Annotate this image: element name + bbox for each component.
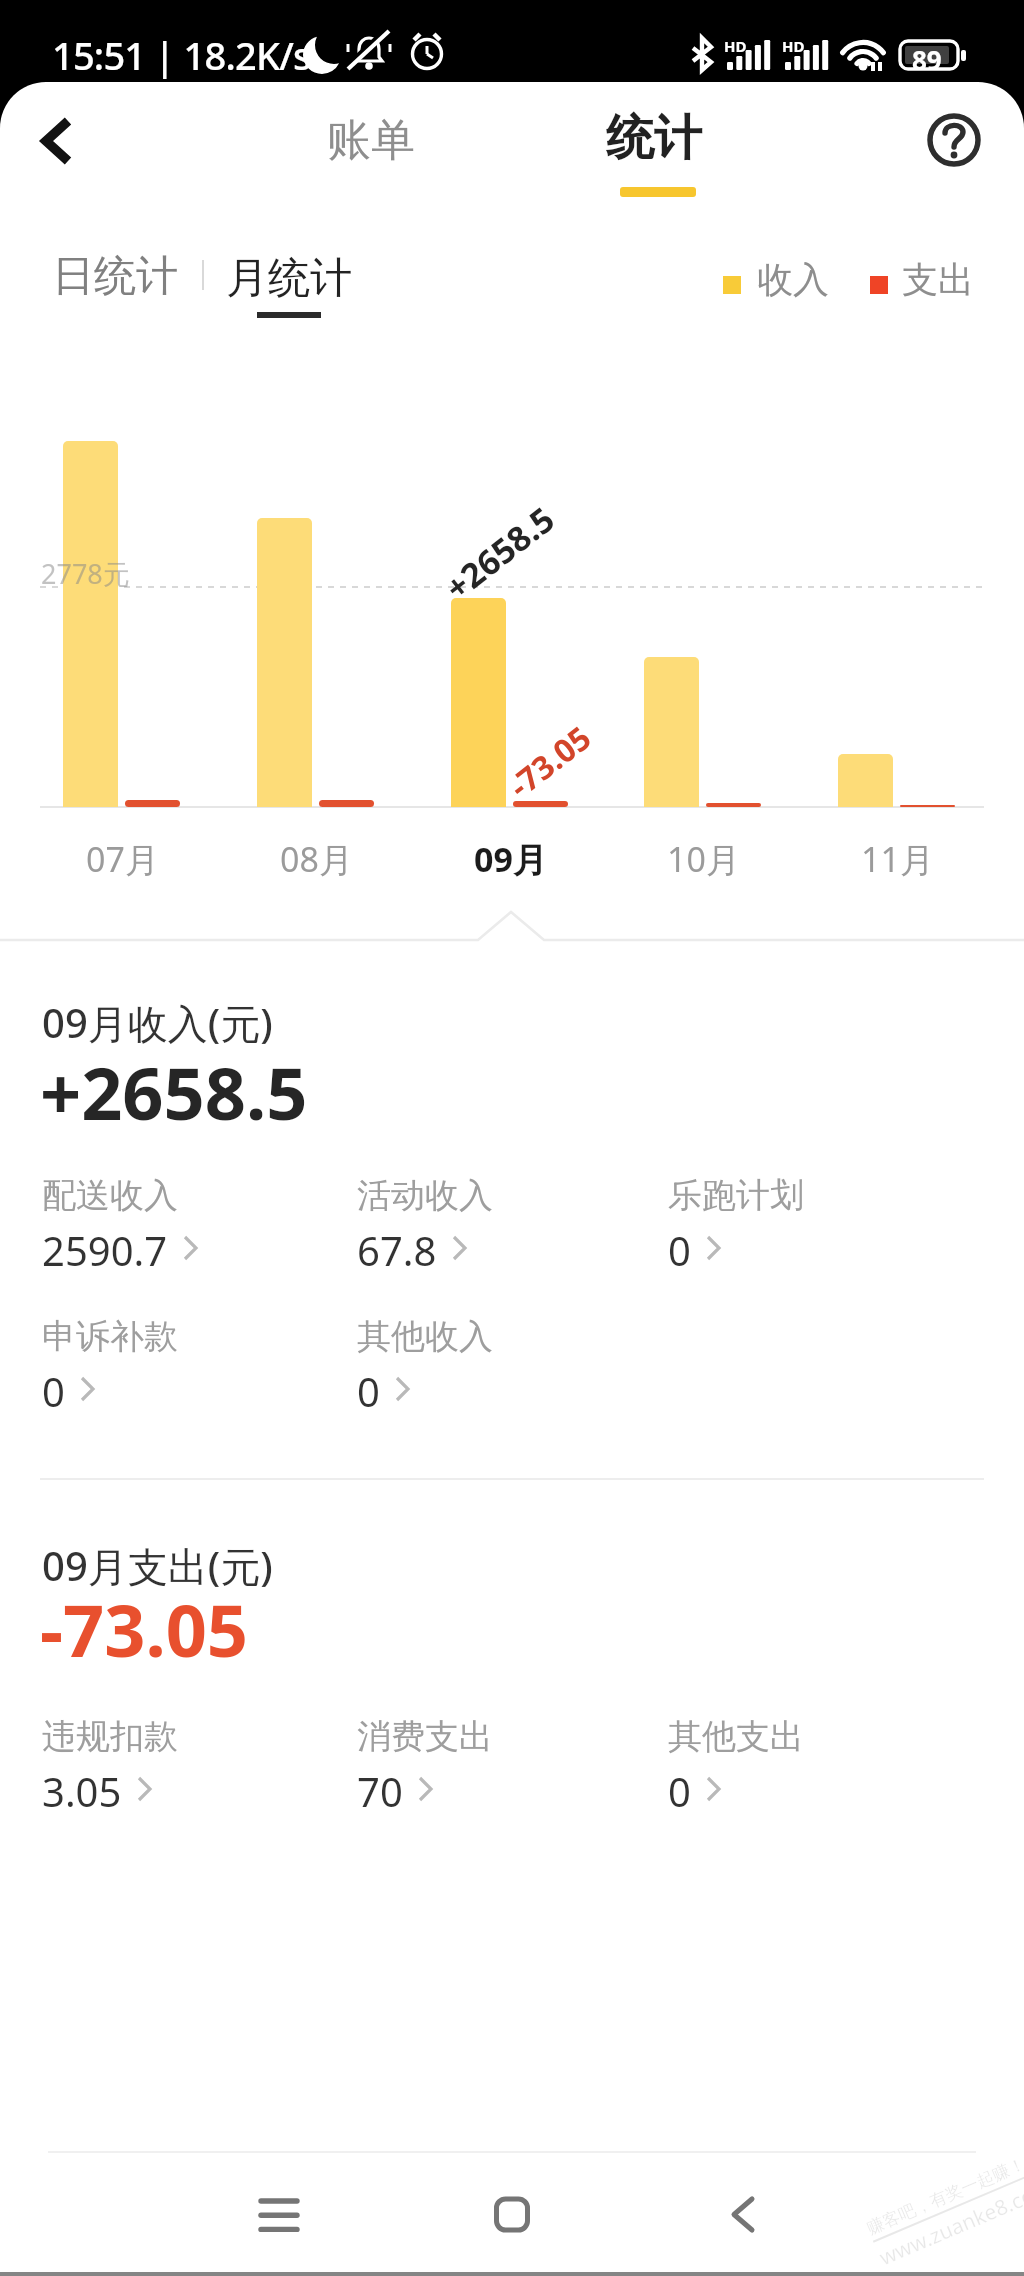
staticText: HD bbox=[782, 36, 805, 56]
staticText: -73.05 bbox=[40, 1580, 249, 1678]
staticText: 乐跑计划 bbox=[668, 1174, 804, 1217]
staticText: 0 bbox=[357, 1364, 380, 1418]
staticText: 89 bbox=[912, 42, 942, 77]
staticText: 67.8 bbox=[357, 1223, 437, 1277]
staticText: 0 bbox=[42, 1364, 65, 1418]
staticText: +2658.5 bbox=[40, 1043, 308, 1141]
button[interactable]: 10月 bbox=[616, 830, 791, 888]
staticText: 赚客吧，有奖一起赚！ bbox=[864, 2153, 1024, 2239]
button[interactable]: 账单 bbox=[305, 100, 437, 180]
staticText: 违规扣款 bbox=[42, 1715, 178, 1758]
staticText: 2778元 bbox=[41, 555, 130, 592]
staticText: 3.05 bbox=[42, 1764, 122, 1818]
button[interactable]: 活动收入 bbox=[357, 1174, 657, 1277]
staticText: 日统计 bbox=[52, 250, 178, 303]
staticText: 账单 bbox=[327, 113, 415, 168]
staticText: 08月 bbox=[280, 836, 353, 882]
button[interactable]: 日统计 bbox=[30, 240, 200, 312]
staticText: 统计 bbox=[606, 108, 702, 168]
staticText: 15:51 | 18.2K/s bbox=[52, 29, 311, 81]
staticText: 配送收入 bbox=[42, 1174, 178, 1217]
button[interactable]: 消费支出 bbox=[357, 1715, 657, 1818]
staticText: 0 bbox=[668, 1764, 691, 1818]
staticText: 09月收入(元) bbox=[42, 995, 273, 1050]
staticText: 月统计 bbox=[226, 252, 352, 305]
button[interactable]: 违规扣款 bbox=[42, 1715, 342, 1818]
button[interactable]: 申诉补款 bbox=[42, 1315, 342, 1418]
staticText: 07月 bbox=[86, 836, 159, 882]
button[interactable]: 统计 bbox=[588, 100, 720, 210]
button[interactable]: Home bbox=[470, 2174, 550, 2254]
staticText: HD bbox=[724, 36, 747, 56]
staticText: www.zuanke8.com bbox=[875, 2173, 1024, 2272]
staticText: 其他支出 bbox=[668, 1715, 804, 1758]
button[interactable]: 09月 bbox=[423, 830, 598, 888]
staticText: 2590.7 bbox=[42, 1223, 168, 1277]
staticText: 活动收入 bbox=[357, 1174, 493, 1217]
button[interactable]: Back bbox=[702, 2174, 782, 2254]
staticText: 消费支出 bbox=[357, 1715, 493, 1758]
staticText: 收入 bbox=[757, 257, 829, 302]
staticText: 10月 bbox=[667, 836, 740, 882]
button[interactable]: 配送收入 bbox=[42, 1174, 342, 1277]
button[interactable]: Back bbox=[6, 100, 90, 184]
button[interactable]: 07月 bbox=[35, 830, 210, 888]
staticText: 70 bbox=[357, 1764, 403, 1818]
staticText: +2658.5 bbox=[435, 496, 564, 610]
button[interactable]: 11月 bbox=[810, 830, 985, 888]
staticText: 申诉补款 bbox=[42, 1315, 178, 1358]
button[interactable]: 乐跑计划 bbox=[668, 1174, 968, 1277]
staticText: 其他收入 bbox=[357, 1315, 493, 1358]
button[interactable]: Recent apps bbox=[239, 2174, 319, 2254]
staticText: 支出 bbox=[902, 257, 974, 302]
button[interactable]: Help bbox=[914, 100, 994, 180]
button[interactable]: 08月 bbox=[229, 830, 404, 888]
staticText: 0 bbox=[668, 1223, 691, 1277]
button[interactable]: 月统计 bbox=[219, 240, 359, 322]
staticText: 09月支出(元) bbox=[42, 1538, 273, 1593]
staticText: 11月 bbox=[861, 836, 934, 882]
staticText: -73.05 bbox=[500, 716, 600, 807]
staticText: 09月 bbox=[474, 836, 547, 882]
button[interactable]: 其他收入 bbox=[357, 1315, 657, 1418]
button[interactable]: 其他支出 bbox=[668, 1715, 968, 1818]
